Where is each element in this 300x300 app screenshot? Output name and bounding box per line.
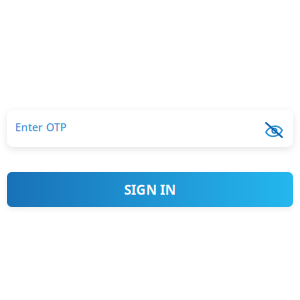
button[interactable]: SIGN IN [7, 172, 293, 207]
button[interactable]: Show OTP [261, 116, 287, 141]
staticText: SIGN IN [124, 181, 176, 198]
staticText: Enter OTP [15, 120, 67, 134]
